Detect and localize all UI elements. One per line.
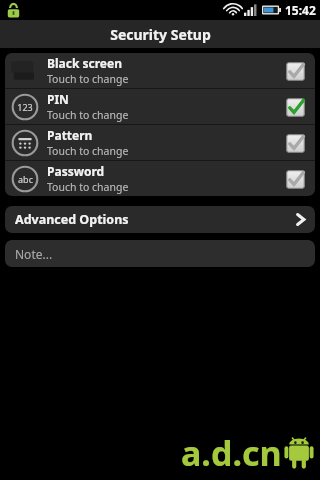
staticText: 15:42 [285, 2, 316, 18]
staticText: Touch to change [47, 72, 129, 86]
staticText: Password [47, 163, 105, 179]
staticText: Security Setup [110, 25, 211, 44]
button[interactable]: 123 [5, 89, 315, 124]
button[interactable]: Black screen [5, 53, 315, 88]
button[interactable]: Advanced Options [5, 206, 315, 233]
button[interactable]: Toggle Pattern [281, 129, 309, 157]
staticText: PIN [47, 91, 69, 107]
button[interactable]: Note... [5, 240, 315, 267]
staticText: Pattern [47, 127, 93, 143]
staticText: Touch to change [47, 144, 129, 158]
button[interactable]: Toggle PIN [281, 93, 309, 121]
button[interactable]: abc [5, 161, 315, 196]
staticText: 123 [17, 101, 33, 113]
button[interactable]: Toggle Password [281, 165, 309, 193]
staticText: abc [18, 173, 33, 185]
button[interactable]: Pattern [5, 125, 315, 160]
staticText: Note... [15, 246, 53, 262]
staticText: Touch to change [47, 108, 129, 122]
staticText: Touch to change [47, 180, 129, 194]
staticText: a.d.cn [181, 430, 282, 476]
staticText: Black screen [47, 55, 122, 71]
button[interactable]: Toggle Black screen [281, 57, 309, 85]
staticText: Advanced Options [15, 211, 296, 228]
